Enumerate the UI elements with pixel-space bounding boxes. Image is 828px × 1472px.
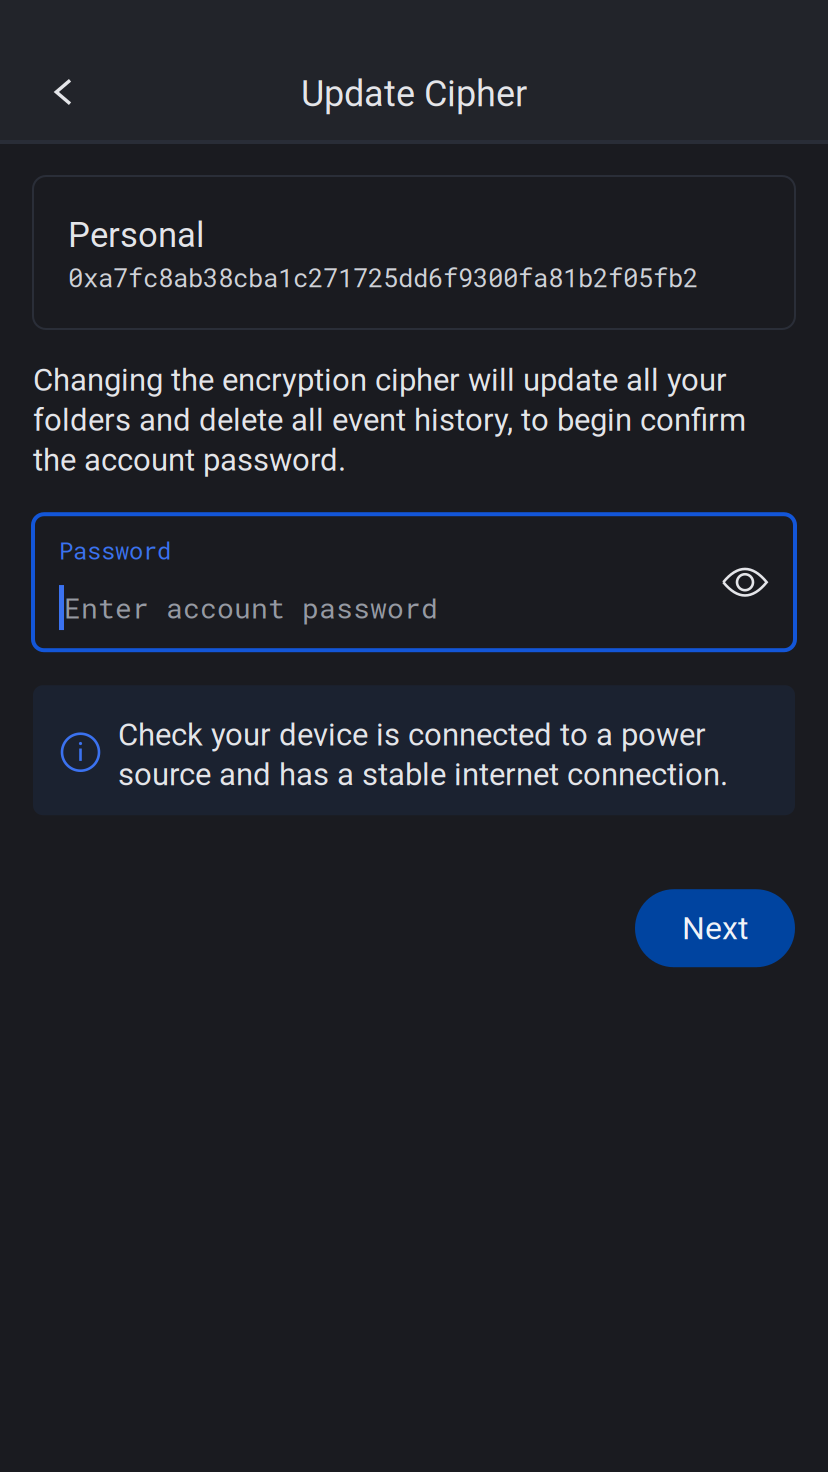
button[interactable]: Back bbox=[21, 47, 105, 137]
button[interactable]: Next bbox=[635, 889, 795, 967]
staticText: Update Cipher bbox=[301, 73, 527, 115]
staticText: Password bbox=[59, 534, 171, 566]
staticText: Next bbox=[682, 909, 748, 947]
button[interactable]: Show password bbox=[708, 545, 782, 619]
staticText: 0xa7fc8ab38cba1c271725dd6f9300fa81b2f05f… bbox=[68, 260, 698, 294]
staticText: Check your device is connected to a powe… bbox=[118, 717, 728, 793]
staticText: Changing the encryption cipher will upda… bbox=[33, 362, 746, 478]
staticText: Personal bbox=[68, 215, 204, 255]
button[interactable]: Password bbox=[59, 534, 438, 630]
staticText: Enter account password bbox=[64, 589, 438, 626]
